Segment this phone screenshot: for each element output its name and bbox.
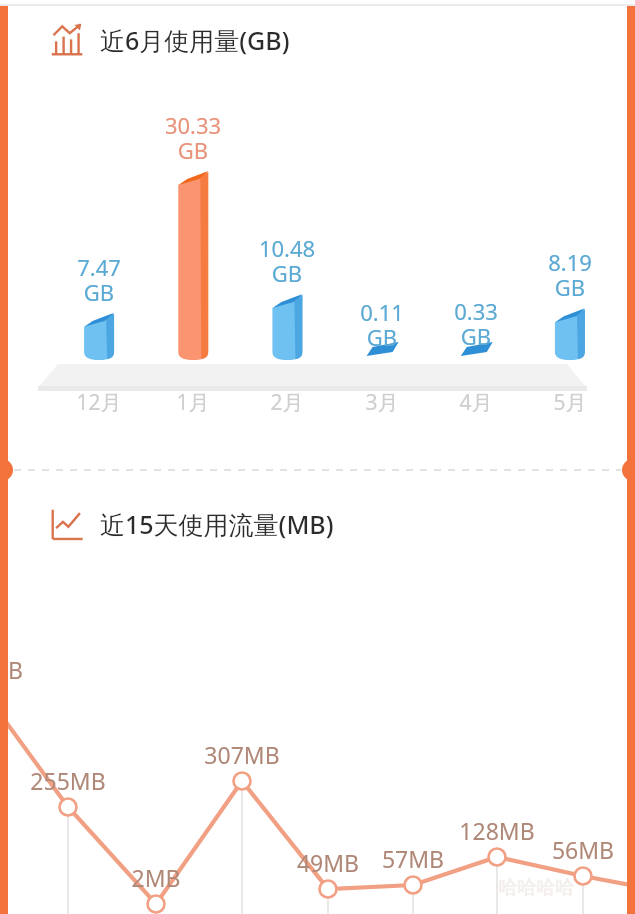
staticText: 57MB	[353, 843, 473, 874]
staticText: 12月	[47, 388, 151, 417]
staticText: 近6月使用量(GB)	[100, 23, 290, 57]
staticText: 307MB	[182, 739, 302, 770]
staticText: 2月	[235, 388, 339, 417]
staticText: 近15天使用流量(MB)	[100, 507, 334, 541]
staticText: 128MB	[437, 815, 557, 846]
staticText: 56MB	[523, 834, 635, 865]
staticText: 49MB	[268, 847, 388, 878]
staticText: 8.19 GB	[518, 247, 622, 302]
staticText: 1月	[141, 388, 245, 417]
staticText: 0.33 GB	[424, 296, 528, 351]
staticText: 3月	[330, 388, 434, 417]
button[interactable]: 近15天使用流量图表	[0, 492, 635, 556]
staticText: 7.47 GB	[47, 252, 151, 307]
staticText: 2MB	[96, 862, 216, 893]
staticText: 5月	[518, 388, 622, 417]
staticText: 4月	[424, 388, 528, 417]
staticText: 30.33 GB	[141, 110, 245, 165]
staticText: 10.48 GB	[235, 233, 339, 288]
staticText: 255MB	[8, 765, 128, 796]
button[interactable]: 近6月使用量图表	[0, 8, 635, 72]
staticText: 哈哈哈哈	[498, 876, 574, 900]
staticText: B	[8, 654, 23, 685]
staticText: 0.11 GB	[330, 297, 434, 352]
